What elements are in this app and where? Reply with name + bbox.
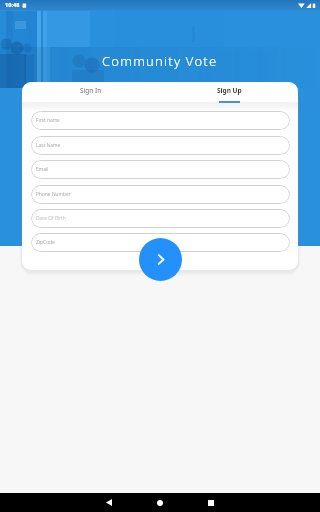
button[interactable]: Recents bbox=[194, 493, 228, 512]
staticText: ZipCode bbox=[36, 239, 55, 246]
staticText: Community Vote bbox=[102, 52, 218, 70]
button[interactable]: Back bbox=[92, 493, 126, 512]
button[interactable]: Last Name bbox=[31, 136, 290, 155]
button[interactable]: Sign In bbox=[22, 82, 160, 103]
staticText: First name bbox=[36, 117, 60, 124]
button[interactable]: Sign Up bbox=[160, 82, 298, 103]
button[interactable]: First name bbox=[31, 111, 290, 130]
button[interactable]: Home bbox=[143, 493, 177, 512]
button[interactable]: ZipCode bbox=[31, 233, 290, 252]
button[interactable]: Phone Number bbox=[31, 185, 290, 204]
button[interactable]: Email bbox=[31, 160, 290, 179]
staticText: Email bbox=[36, 166, 49, 173]
staticText: Phone Number bbox=[36, 191, 71, 198]
button[interactable]: Date Of Birth bbox=[31, 209, 290, 228]
staticText: Last Name bbox=[36, 142, 61, 149]
staticText: Date Of Birth bbox=[36, 215, 66, 222]
staticText: Sign In bbox=[80, 86, 102, 95]
staticText: 10:48 bbox=[5, 1, 20, 9]
staticText: Sign Up bbox=[217, 86, 242, 95]
button[interactable]: Next bbox=[139, 238, 182, 281]
